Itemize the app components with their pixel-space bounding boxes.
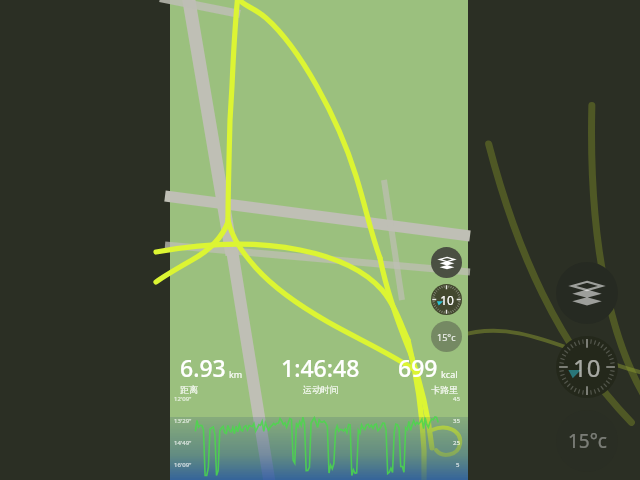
button[interactable]: Map layers [556,262,618,324]
staticText: 25 [453,439,460,447]
staticText: 12'09" [174,395,192,403]
button[interactable]: Temperature 15 degrees [431,321,462,352]
staticText: 10 [573,351,601,384]
staticText: 距离 [180,384,198,395]
staticText: 5 [456,461,460,469]
button[interactable]: Compass, altitude 10 [556,336,618,398]
staticText: km [229,368,243,380]
staticText: 卡路里 [431,384,458,395]
staticText: 1:46:48 [281,352,360,383]
staticText: 45 [453,395,460,403]
staticText: 10 [440,292,454,308]
button[interactable]: Map layers [431,247,462,278]
staticText: kcal [441,368,458,380]
staticText: 6.93 [180,352,226,383]
staticText: 14'49" [174,439,192,447]
staticText: 16'09" [174,461,192,469]
staticText: 13'29" [174,417,192,425]
staticText: 15°c [437,331,456,343]
staticText: 运动时间 [303,384,339,395]
button[interactable]: Compass, altitude 10 [431,284,462,315]
staticText: 15°c [568,428,607,454]
button[interactable]: Temperature 15 degrees [556,410,618,472]
staticText: 35 [453,417,460,425]
staticText: 699 [398,352,438,383]
